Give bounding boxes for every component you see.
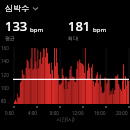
staticText: 최대 — [68, 35, 78, 41]
button[interactable]: 심박수 — [0, 0, 130, 15]
staticText: 120 — [1, 72, 9, 78]
staticText: 8:00 — [50, 110, 59, 116]
staticText: 80 — [1, 98, 7, 104]
staticText: 시간(시) — [56, 116, 75, 123]
staticText: bpm — [30, 26, 43, 34]
staticText: 20:00 — [116, 110, 128, 116]
staticText: 181 — [68, 17, 91, 35]
staticText: 160 — [1, 45, 9, 51]
button[interactable]: 181 — [68, 17, 130, 41]
staticText: 평균 — [5, 35, 15, 41]
button[interactable]: 133 — [5, 17, 65, 41]
staticText: bpm — [93, 26, 106, 34]
staticText: 133 — [5, 17, 28, 35]
staticText: 4:00 — [28, 110, 37, 116]
staticText: 100 — [1, 85, 9, 91]
staticText: 0:00 — [5, 110, 14, 116]
staticText: 심박수 — [5, 3, 29, 13]
staticText: 140 — [1, 58, 9, 64]
staticText: 12:00 — [72, 110, 84, 116]
staticText: 16:00 — [94, 110, 106, 116]
